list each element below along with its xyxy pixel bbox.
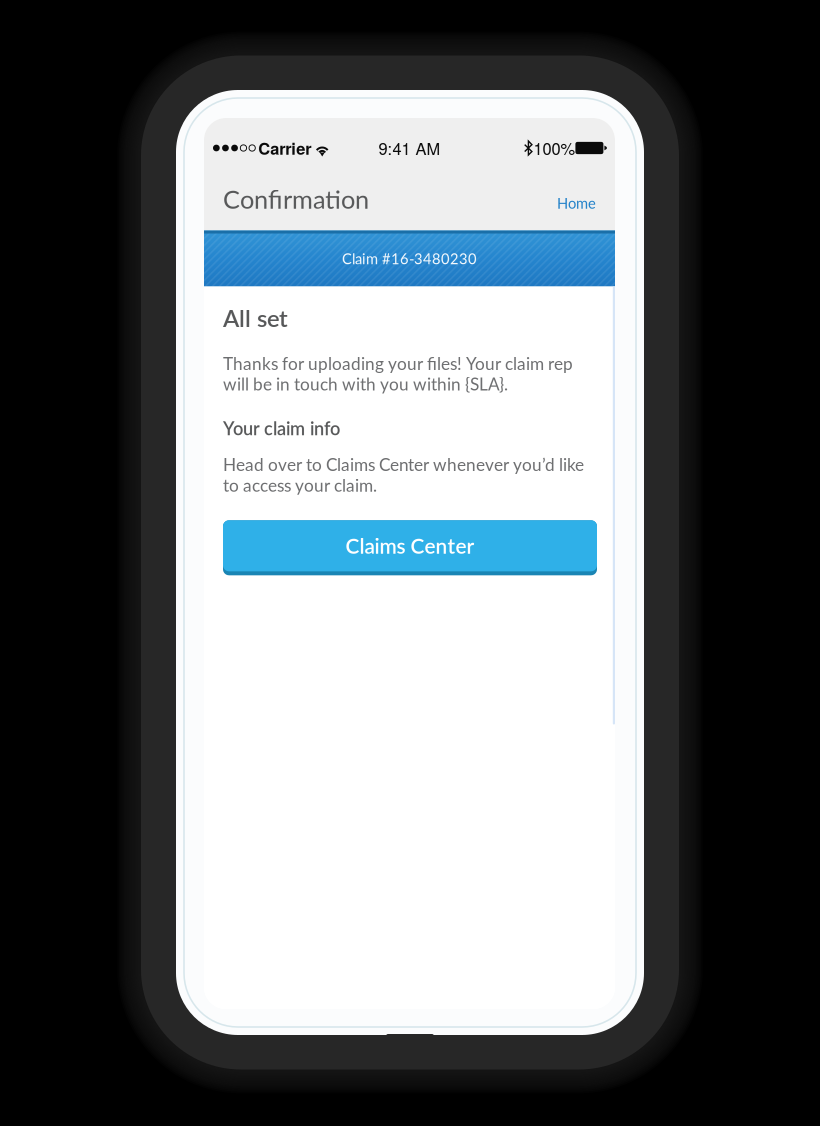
staticText: Claim #16-3480230 [342,250,477,267]
button[interactable]: Claims Center [223,520,597,575]
staticText: Confirmation [223,184,369,214]
staticText: Home [557,194,596,212]
staticText: 9:41 AM [378,136,440,160]
staticText: Carrier [255,136,314,160]
staticText: Thanks for uploading your files! Your cl… [223,353,573,394]
staticText: All set [223,303,288,332]
staticText: Your claim info [223,417,340,439]
staticText: Head over to Claims Center whenever you’… [223,454,584,495]
staticText: Claims Center [345,533,474,558]
staticText: 100% [533,136,575,160]
button[interactable]: Home [551,185,602,221]
